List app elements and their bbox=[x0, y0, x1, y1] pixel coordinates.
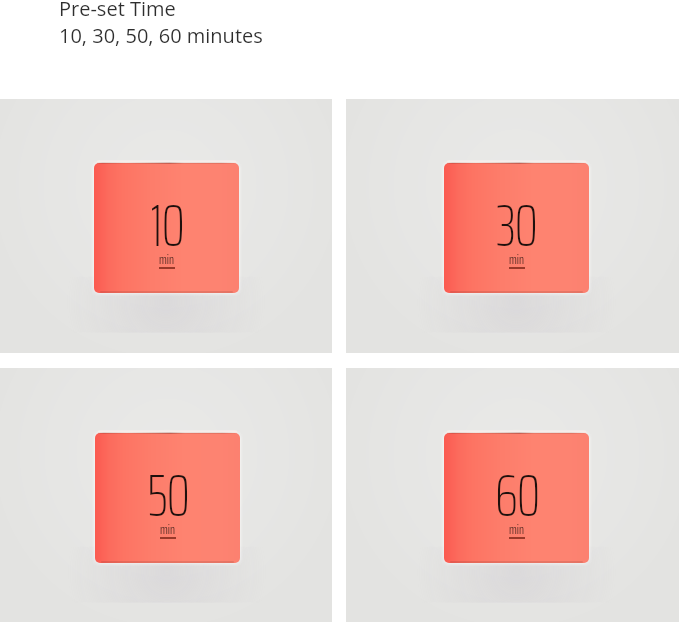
button[interactable]: 30 minute preset timer photo bbox=[346, 99, 679, 353]
button[interactable]: 10 minute preset timer photo bbox=[0, 99, 332, 353]
staticText: 50 bbox=[147, 449, 189, 542]
staticText: 60 bbox=[495, 449, 539, 542]
staticText: min bbox=[509, 519, 525, 539]
staticText: min bbox=[509, 249, 525, 269]
button[interactable]: 50 minute preset timer photo bbox=[0, 368, 332, 622]
staticText: 10, 30, 50, 60 minutes bbox=[59, 22, 263, 49]
staticText: Pre-set Time bbox=[59, 0, 176, 22]
staticText: 10 bbox=[150, 179, 184, 272]
staticText: min bbox=[159, 249, 175, 269]
button[interactable]: 60 minute preset timer photo bbox=[346, 368, 679, 622]
staticText: min bbox=[160, 519, 176, 539]
staticText: 30 bbox=[496, 179, 537, 272]
